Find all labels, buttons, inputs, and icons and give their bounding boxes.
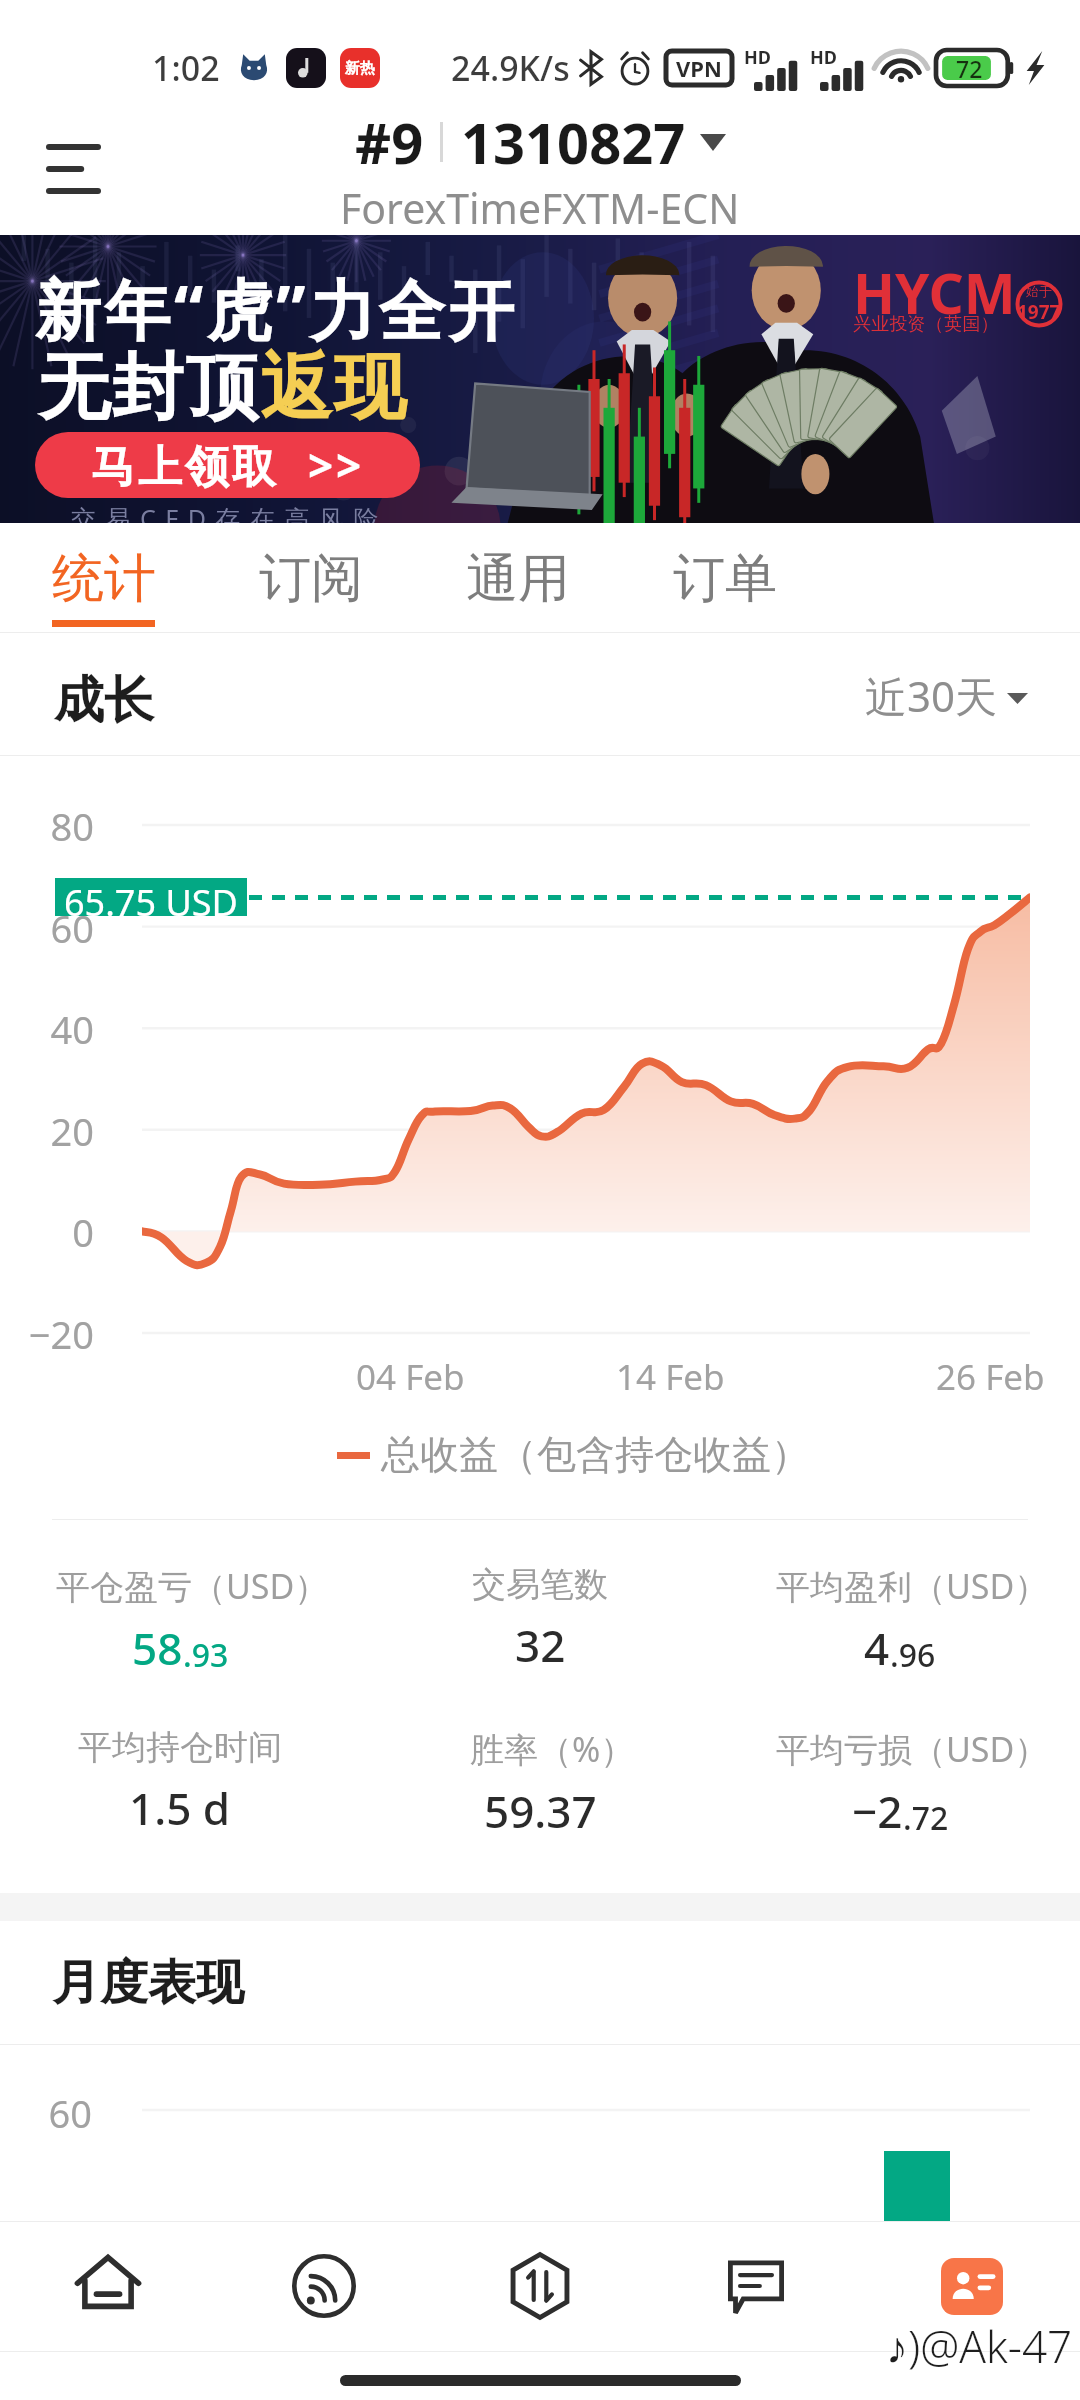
staticText: 新年“虎”力全开 <box>35 263 518 353</box>
button[interactable]: 订单 <box>673 523 880 633</box>
staticText: 返现 <box>259 343 407 434</box>
staticText: 平仓盈亏（USD） <box>56 1563 329 1609</box>
staticText: 72 <box>956 53 983 84</box>
staticText: 40 <box>2 1003 94 1055</box>
button[interactable]: 通用 <box>466 523 673 633</box>
staticText: 平均亏损（USD） <box>776 1726 1049 1772</box>
staticText: 成长 <box>54 669 154 732</box>
staticText: 4 <box>864 1618 890 1678</box>
staticText: 订单 <box>673 546 777 612</box>
staticText: VPN <box>676 53 722 83</box>
staticText: 32 <box>515 1615 566 1675</box>
staticText: HYCM <box>853 255 1016 330</box>
button[interactable]: 订阅 <box>259 523 466 633</box>
staticText: 1:02 <box>152 45 220 91</box>
staticText: 始于 <box>1026 283 1052 299</box>
staticText: 平均盈利（USD） <box>776 1563 1049 1609</box>
staticText: HD <box>744 45 771 70</box>
staticText: 04 Feb <box>356 1353 465 1401</box>
staticText: 胜率（%） <box>470 1726 635 1772</box>
button[interactable]: Home <box>0 2221 216 2352</box>
staticText: 26 Feb <box>936 1353 1045 1401</box>
button[interactable]: #9 <box>340 104 740 229</box>
staticText: 1.5 d <box>129 1778 231 1838</box>
staticText: 60 <box>2 902 94 954</box>
staticText: 总收益（包含持仓收益） <box>381 1430 810 1479</box>
button[interactable]: Quotes <box>216 2221 432 2352</box>
button[interactable]: Trade <box>432 2221 648 2352</box>
button[interactable]: Promotion banner <box>0 235 1080 523</box>
button[interactable]: 统计 <box>52 523 259 633</box>
staticText: 无封顶 <box>37 343 259 434</box>
button[interactable]: Profile <box>864 2221 1080 2352</box>
staticText: .93 <box>183 1633 229 1677</box>
staticText: 通用 <box>466 546 570 612</box>
staticText: 60 <box>0 2087 92 2139</box>
staticText: ♪)@Ak-47 <box>886 2316 1073 2376</box>
button[interactable]: 近30天 <box>861 670 1028 727</box>
staticText: HD <box>810 45 837 70</box>
button[interactable]: Messages <box>648 2221 864 2352</box>
staticText: 交 易 C F D 存 在 高 风 险 <box>71 501 381 535</box>
staticText: 新热 <box>345 59 375 78</box>
staticText: .96 <box>890 1633 936 1677</box>
staticText: 1310827 <box>461 104 686 180</box>
staticText: 兴业投资（英国） <box>853 313 999 336</box>
staticText: 14 Feb <box>616 1353 725 1401</box>
staticText: ForexTimeFXTM-ECN <box>340 180 740 229</box>
staticText: 近30天 <box>865 667 998 724</box>
staticText: 平均持仓时间 <box>78 1726 282 1769</box>
staticText: 20 <box>2 1105 94 1157</box>
staticText: 80 <box>2 800 94 852</box>
staticText: 65.75 USD <box>64 878 238 916</box>
staticText: −2 <box>852 1781 903 1841</box>
staticText: .72 <box>903 1796 949 1840</box>
staticText: 1977 <box>1017 299 1061 325</box>
staticText: 统计 <box>52 546 156 612</box>
staticText: −20 <box>2 1308 94 1360</box>
staticText: 58 <box>132 1618 183 1678</box>
staticText: 0 <box>2 1206 94 1258</box>
staticText: 交易笔数 <box>472 1563 608 1606</box>
staticText: 马上领取 >> <box>91 435 365 495</box>
button[interactable]: Menu <box>27 123 119 215</box>
staticText: 月度表现 <box>52 1953 244 2013</box>
staticText: 59.37 <box>484 1781 597 1841</box>
button[interactable]: 马上领取 >> <box>35 432 420 498</box>
staticText: 订阅 <box>259 546 363 612</box>
staticText: #9 <box>355 104 424 180</box>
staticText: 24.9K/s <box>451 45 570 91</box>
